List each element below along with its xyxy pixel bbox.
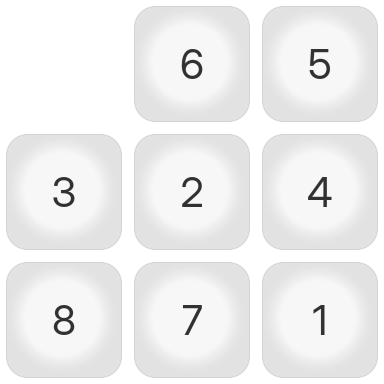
staticText: 4: [307, 167, 333, 217]
staticText: 5: [308, 39, 332, 89]
button[interactable]: 8: [6, 262, 121, 377]
staticText: 2: [180, 167, 203, 217]
button[interactable]: 3: [6, 134, 121, 249]
staticText: 8: [52, 295, 76, 345]
button[interactable]: 4: [262, 134, 377, 249]
button[interactable]: 1: [262, 262, 377, 377]
staticText: 1: [312, 295, 327, 345]
button[interactable]: 6: [134, 6, 249, 121]
button[interactable]: 2: [134, 134, 249, 249]
staticText: 7: [181, 295, 202, 345]
staticText: 3: [51, 167, 76, 217]
button[interactable]: 5: [262, 6, 377, 121]
staticText: 6: [180, 39, 204, 89]
button[interactable]: 7: [134, 262, 249, 377]
